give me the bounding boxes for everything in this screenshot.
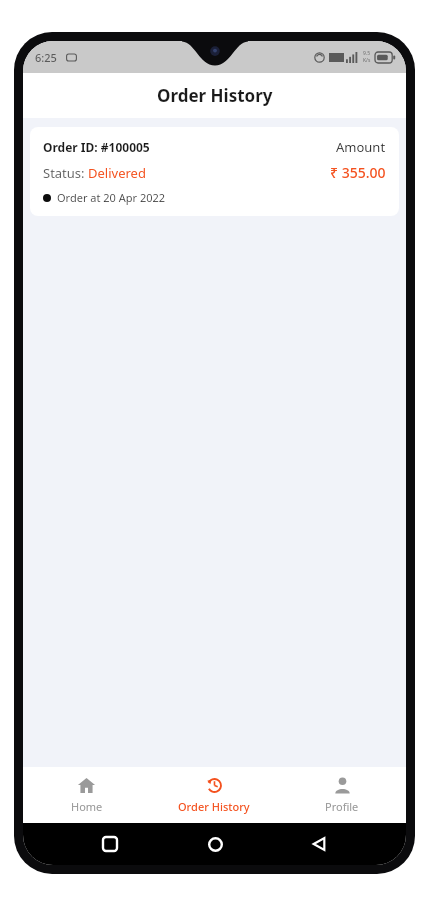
button[interactable]: Order History: [150, 767, 278, 823]
staticText: 6:25: [35, 50, 57, 65]
button[interactable]: Order ID: #100005: [30, 127, 399, 216]
staticText: Order at 20 Apr 2022: [57, 190, 166, 205]
staticText: Delivered: [88, 164, 146, 182]
staticText: Status:: [43, 164, 88, 182]
staticText: Home: [71, 799, 103, 814]
button[interactable]: Home: [197, 826, 233, 862]
button[interactable]: Home: [23, 767, 150, 823]
button[interactable]: Back: [301, 826, 337, 862]
button[interactable]: Profile: [278, 767, 406, 823]
staticText: 9.5: [363, 50, 371, 57]
staticText: Order History: [178, 799, 250, 814]
staticText: Profile: [325, 799, 359, 814]
staticText: Order ID: #100005: [43, 139, 150, 155]
button[interactable]: Recent apps: [92, 826, 128, 862]
staticText: Order History: [157, 84, 273, 107]
staticText: ₹ 355.00: [330, 163, 386, 182]
staticText: K/s: [363, 57, 371, 64]
staticText: Amount: [336, 138, 386, 156]
